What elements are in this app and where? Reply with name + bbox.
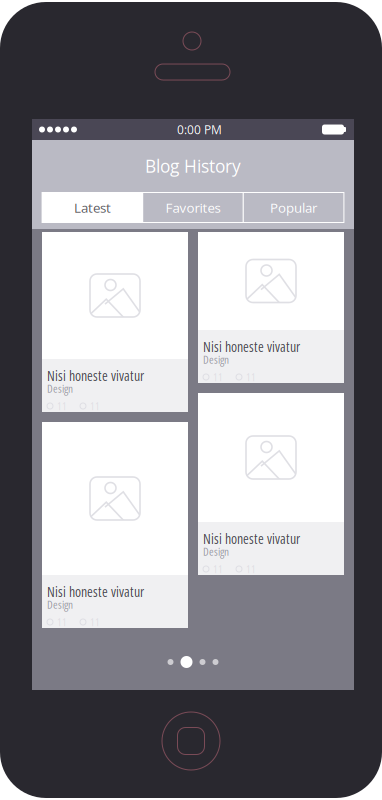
staticText: Design [203, 352, 229, 367]
staticText: 11 [57, 399, 67, 413]
button[interactable]: Nisi honeste vivatur [198, 232, 344, 383]
staticText: Design [47, 381, 73, 396]
staticText: Design [47, 597, 73, 612]
button[interactable]: Nisi honeste vivatur [42, 232, 188, 412]
staticText: Nisi honeste vivatur [47, 366, 144, 385]
staticText: Blog History [145, 154, 241, 178]
staticText: 11 [213, 370, 223, 384]
button[interactable]: Nisi honeste vivatur [198, 393, 344, 575]
staticText: Favorites [165, 198, 220, 217]
staticText: Latest [74, 198, 111, 217]
staticText: Design [203, 544, 229, 559]
staticText: 11 [90, 615, 100, 629]
staticText: Popular [270, 198, 317, 217]
staticText: 11 [246, 370, 256, 384]
button[interactable]: Latest [43, 193, 142, 222]
staticText: 11 [246, 562, 256, 576]
button[interactable]: Nisi honeste vivatur [42, 422, 188, 628]
staticText: Nisi honeste vivatur [203, 337, 300, 356]
staticText: 11 [90, 399, 100, 413]
staticText: Nisi honeste vivatur [203, 529, 300, 548]
staticText: 11 [57, 615, 67, 629]
button[interactable]: Popular [244, 193, 343, 222]
button[interactable]: Favorites [143, 193, 243, 222]
staticText: 11 [213, 562, 223, 576]
staticText: Nisi honeste vivatur [47, 582, 144, 601]
staticText: 0:00 PM [177, 121, 222, 138]
